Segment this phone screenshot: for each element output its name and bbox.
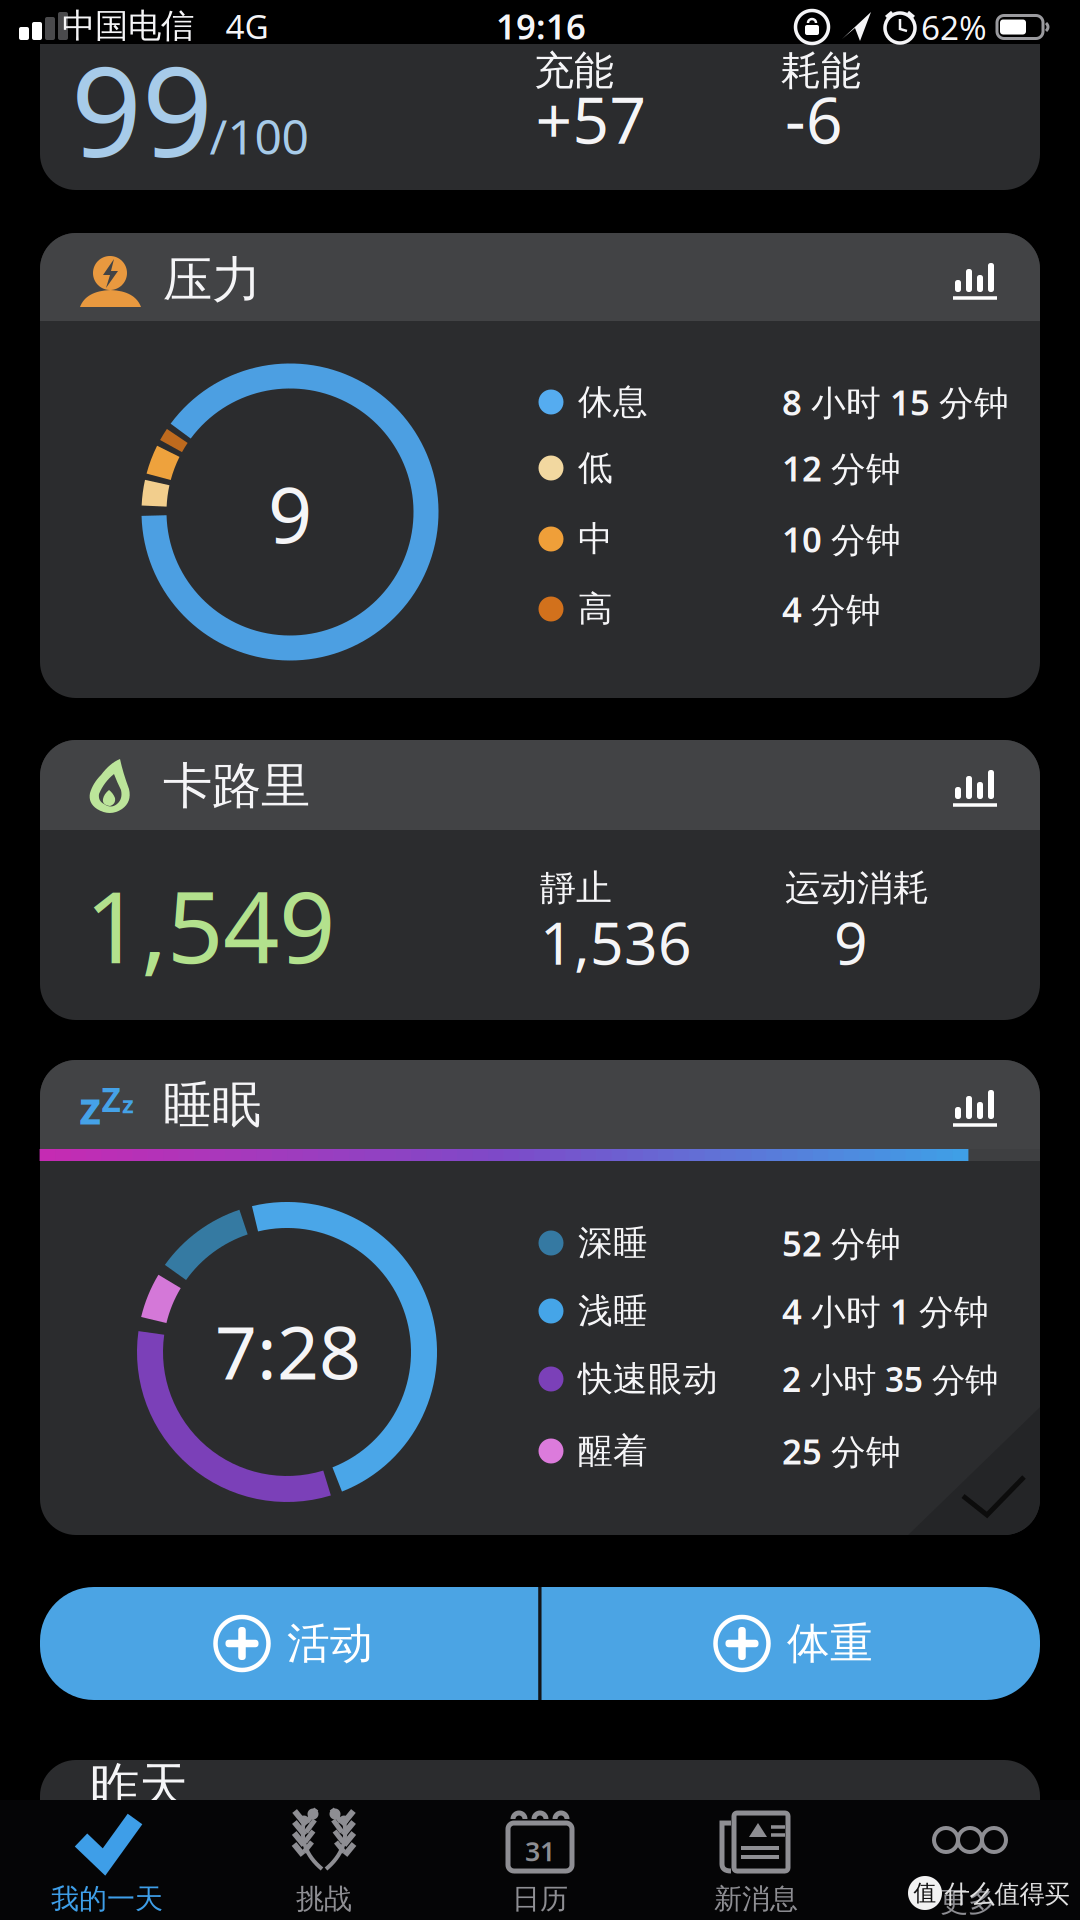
button[interactable]: 查看图表 [0,0,1080,1920]
staticText: 快速眼动 [578,1358,718,1400]
staticText: 12 分钟 [782,445,901,491]
staticText: 睡眠 [163,1075,261,1135]
staticText: 1,536 [540,903,692,981]
staticText: 7:28 [215,1302,361,1400]
staticText: z [122,1088,134,1120]
staticText: 19:16 [496,3,586,49]
button[interactable]: 更多 [864,1800,1080,1920]
staticText: -6 [785,76,843,161]
button[interactable]: 我的一天 [0,1800,216,1920]
button[interactable]: 卡路里 [40,740,1040,1021]
staticText: 充能 [534,46,614,95]
staticText: 中国电信 [62,5,194,46]
staticText: z [79,1077,101,1137]
staticText: 休息 [578,381,648,423]
staticText: 31 [525,1833,555,1869]
staticText: 4 小时 1 分钟 [782,1288,989,1334]
staticText: 低 [578,447,613,489]
staticText: 1,549 [85,859,335,990]
staticText: 日历 [512,1882,568,1916]
staticText: 压力 [163,250,261,310]
staticText: 4 分钟 [782,586,881,632]
button[interactable]: 体重 [541,1587,1040,1700]
staticText: 耗能 [781,46,861,95]
staticText: 52 分钟 [782,1220,901,1266]
button[interactable]: 新消息 [648,1800,864,1920]
staticText: 99 [71,27,213,191]
staticText: 靜止 [540,866,612,910]
staticText: 深睡 [578,1222,648,1264]
staticText: 值 [913,1879,936,1907]
button[interactable]: 挑战 [216,1800,432,1920]
staticText: 4G [225,4,268,48]
staticText: 8 小时 15 分钟 [782,379,1009,425]
staticText: 什么值得买 [944,1878,1069,1909]
staticText: 高 [578,588,613,630]
staticText: Z [101,1077,120,1121]
staticText: 25 分钟 [782,1428,901,1474]
button[interactable]: 确认 [920,1415,1040,1535]
staticText: 昨天 [90,1756,188,1816]
staticText: 62% [921,5,987,49]
staticText: 体重 [787,1617,873,1670]
staticText: 新消息 [714,1882,798,1916]
button[interactable]: 压力 [40,233,1040,698]
staticText: 挑战 [296,1882,352,1916]
staticText: /100 [209,104,308,168]
staticText: 9 [834,903,868,981]
staticText: 活动 [287,1617,373,1670]
staticText: +57 [535,76,646,161]
staticText: 10 分钟 [782,516,901,562]
button[interactable]: 查看图表 [0,0,1080,1920]
staticText: 中 [578,518,613,560]
staticText: 2 小时 35 分钟 [782,1357,998,1401]
staticText: 我的一天 [51,1882,163,1916]
staticText: 浅睡 [578,1290,648,1332]
staticText: 醒着 [578,1430,648,1472]
button[interactable]: 查看图表 [0,0,1080,1920]
staticText: 9 [268,462,312,564]
staticText: 更多 [940,1885,996,1919]
button[interactable]: 31 [432,1800,648,1920]
staticText: 运动消耗 [785,866,929,910]
button[interactable]: 活动 [40,1587,538,1700]
button[interactable]: 身体电量 [40,44,1040,191]
button[interactable]: 睡眠 [40,1060,1040,1535]
staticText: 卡路里 [163,756,310,816]
